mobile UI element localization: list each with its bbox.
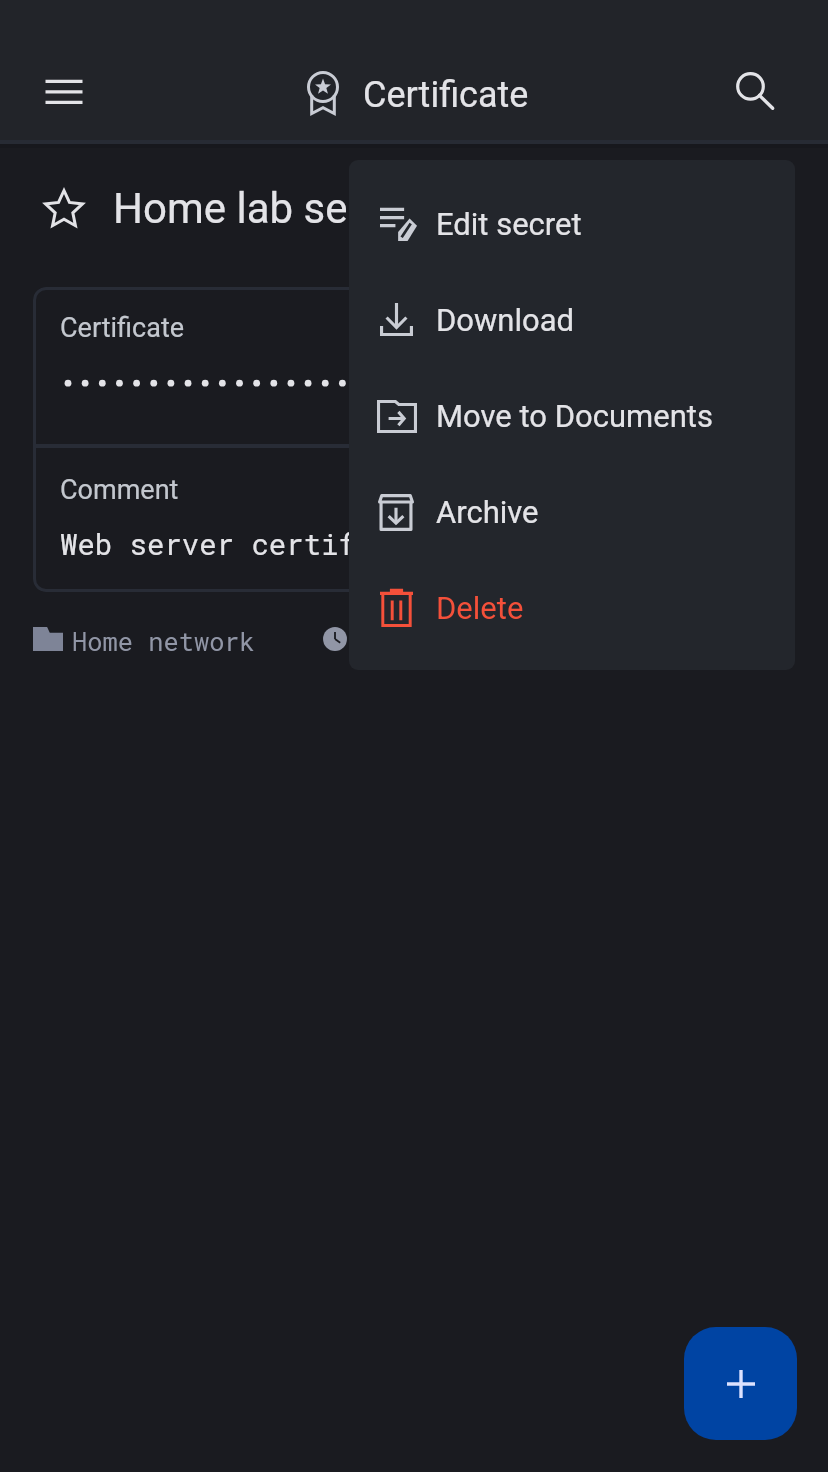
- button[interactable]: Edit secret: [349, 175, 795, 271]
- button[interactable]: Navigation menu: [24, 52, 104, 132]
- button[interactable]: Move to Documents: [349, 367, 795, 463]
- staticText: Edit secret: [436, 206, 582, 242]
- button[interactable]: Archive: [349, 463, 795, 559]
- button[interactable]: Add: [684, 1327, 797, 1440]
- button[interactable]: Search: [710, 46, 790, 126]
- staticText: Move to Documents: [436, 398, 713, 434]
- staticText: Home lab server: [113, 184, 419, 233]
- staticText: Certificate: [363, 74, 529, 116]
- staticText: Web server certificate: [60, 525, 443, 563]
- staticText: Download: [436, 302, 575, 338]
- button[interactable]: Download: [349, 271, 795, 367]
- staticText: Delete: [436, 590, 524, 626]
- staticText: Archive: [436, 494, 539, 530]
- staticText: Certificate: [60, 312, 185, 344]
- staticText: Home network: [72, 624, 255, 657]
- button[interactable]: Delete: [349, 559, 795, 655]
- staticText: Comment: [60, 474, 179, 506]
- button[interactable]: Favourite: [34, 177, 94, 237]
